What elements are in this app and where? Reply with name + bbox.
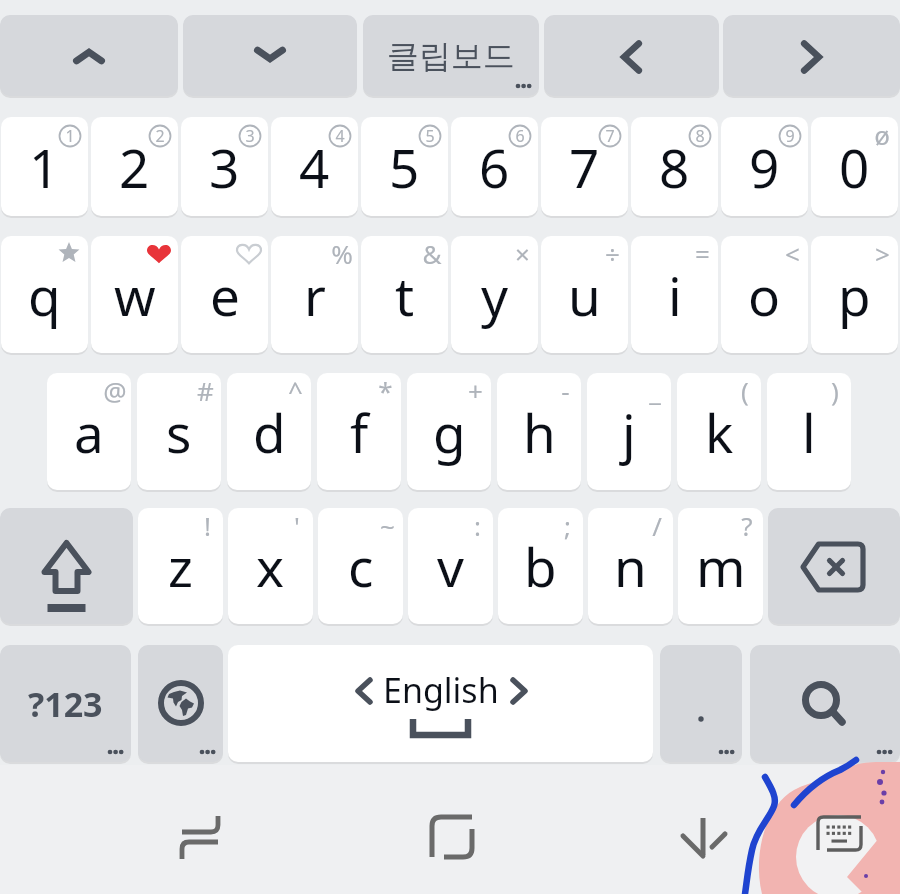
staticText: b [524,530,557,602]
button[interactable]: w [91,236,178,353]
staticText: o [748,259,781,331]
staticText: 3 [209,131,240,203]
staticText: 9 [749,131,780,203]
staticText: # [197,373,214,407]
staticText: q [28,259,61,331]
staticText: r [304,259,326,331]
button[interactable]: Recents [150,797,250,877]
button[interactable]: Previous [544,15,719,96]
staticText: @ [103,373,127,407]
staticText: _ [649,373,661,407]
staticText: / [652,508,662,542]
button[interactable]: c [318,508,403,624]
button[interactable]: ?123 [0,645,131,762]
staticText: 8 [695,125,705,147]
button[interactable]: Space [228,645,653,762]
button[interactable]: Expand [0,15,178,96]
staticText: 2 [119,131,150,203]
button[interactable]: 3 [181,117,268,216]
button[interactable]: 1 [1,117,88,216]
staticText: c [348,530,374,602]
staticText: l [802,396,816,468]
button[interactable]: f [317,373,401,490]
staticText: 1 [65,125,75,147]
staticText: n [614,530,647,602]
button[interactable]: t [361,236,448,353]
button[interactable]: v [408,508,493,624]
button[interactable]: Backspace [768,508,900,624]
staticText: a [74,396,104,468]
button[interactable]: m [678,508,763,624]
button[interactable]: i [631,236,718,353]
button[interactable]: Collapse [183,15,357,96]
staticText: ; [564,508,571,542]
staticText: 4 [335,125,345,147]
button[interactable]: 5 [361,117,448,216]
button[interactable]: u [541,236,628,353]
staticText: 7 [605,125,615,147]
staticText: 5 [425,125,435,147]
staticText: ' [294,508,300,542]
staticText: k [705,396,734,468]
staticText: ) [831,373,839,407]
button[interactable]: e [181,236,268,353]
button[interactable]: y [451,236,538,353]
button[interactable]: Shift [0,508,133,624]
button[interactable]: 7 [541,117,628,216]
button[interactable]: 4 [271,117,358,216]
button[interactable]: z [138,508,223,624]
staticText: - [561,373,570,407]
button[interactable]: Next [723,15,900,96]
staticText: & [422,236,442,270]
button[interactable]: Home [402,797,502,877]
staticText: × [515,236,530,270]
staticText: ^ [288,373,303,407]
staticText: g [433,396,466,468]
staticText: 9 [785,125,795,147]
button[interactable]: q [1,236,88,353]
staticText: v [437,530,464,602]
staticText: i [668,259,682,331]
button[interactable]: r [271,236,358,353]
staticText: 1 [29,131,60,203]
button[interactable]: p [811,236,898,353]
button[interactable]: b [498,508,583,624]
button[interactable]: d [227,373,311,490]
staticText: j [622,396,636,468]
staticText: = [695,236,710,270]
staticText: w [114,259,156,331]
button[interactable]: k [677,373,761,490]
staticText: h [523,396,556,468]
button[interactable]: h [497,373,581,490]
button[interactable]: j [587,373,671,490]
button[interactable]: n [588,508,673,624]
staticText: 4 [299,131,330,203]
button[interactable]: x [228,508,313,624]
button[interactable]: 6 [451,117,538,216]
staticText: p [838,259,871,331]
button[interactable]: 8 [631,117,718,216]
button[interactable]: s [137,373,221,490]
staticText: 2 [155,125,165,147]
button[interactable]: Search [750,645,900,762]
staticText: z [168,530,193,602]
button[interactable]: 9 [721,117,808,216]
button[interactable]: a [47,373,131,490]
button[interactable]: g [407,373,491,490]
staticText: English [383,667,499,713]
staticText: 0 [839,131,870,203]
button[interactable]: o [721,236,808,353]
button[interactable]: 2 [91,117,178,216]
staticText: 클립보드 [387,36,515,76]
button[interactable]: l [767,373,851,490]
staticText: 3 [245,125,255,147]
staticText: u [568,259,601,331]
staticText: ÷ [605,236,620,270]
staticText: m [696,530,746,602]
button[interactable]: Change language [138,645,223,762]
button[interactable]: Period [660,645,742,762]
button[interactable]: 클립보드 [363,15,539,96]
button[interactable]: 0 [811,117,898,216]
staticText: 7 [569,131,600,203]
button[interactable]: Hide keyboard [655,797,755,877]
